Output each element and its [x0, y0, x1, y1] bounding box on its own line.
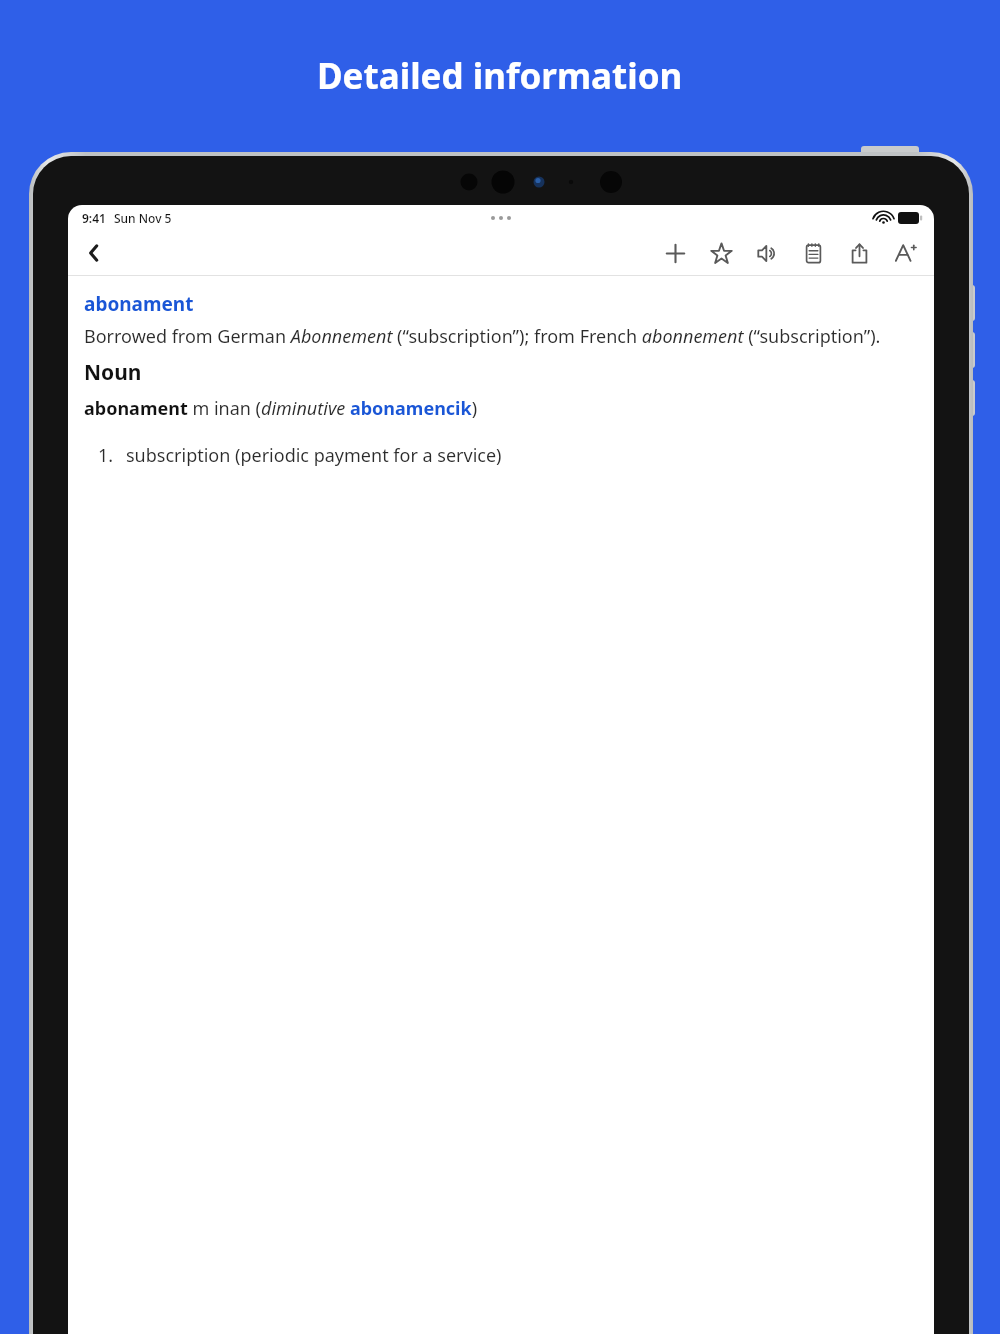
staticText: Sun Nov 5: [114, 210, 172, 226]
staticText: Noun: [84, 358, 142, 387]
button[interactable]: Share: [840, 234, 878, 272]
staticText: Detailed information: [317, 52, 683, 100]
staticText: 9:41: [82, 210, 106, 226]
button[interactable]: Add: [656, 234, 694, 272]
staticText: 1.: [98, 443, 114, 468]
button[interactable]: Text size: [886, 234, 924, 272]
button[interactable]: Pronounce: [748, 234, 786, 272]
button[interactable]: Notes: [794, 234, 832, 272]
staticText: abonament: [84, 291, 194, 317]
staticText: Borrowed from German Abonnement (“subscr…: [84, 324, 881, 349]
staticText: abonament m inan (diminutive abonamencik…: [84, 396, 478, 421]
button[interactable]: abonament: [84, 291, 194, 317]
button[interactable]: Back: [72, 231, 116, 275]
button[interactable]: Favorite: [702, 234, 740, 272]
staticText: subscription (periodic payment for a ser…: [126, 443, 502, 468]
